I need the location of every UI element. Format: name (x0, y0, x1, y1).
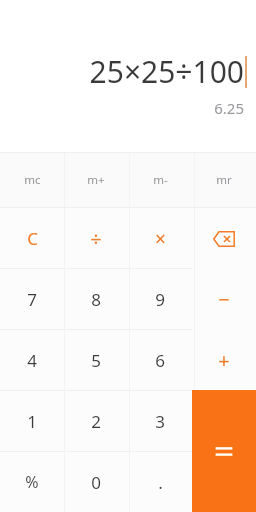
button[interactable]: Equals (192, 390, 256, 512)
staticText: 6 (155, 349, 165, 372)
staticText: 9 (155, 288, 165, 311)
button[interactable]: % (0, 452, 64, 512)
button[interactable]: × (128, 208, 192, 269)
staticText: 7 (27, 288, 37, 311)
staticText: 3 (155, 410, 165, 433)
button[interactable]: 4 (0, 330, 64, 391)
staticText: m+ (87, 172, 105, 188)
staticText: 4 (27, 349, 37, 372)
button[interactable]: 6 (128, 330, 192, 391)
button[interactable]: mc (0, 152, 64, 208)
button[interactable]: 0 (64, 452, 128, 512)
button[interactable]: 2 (64, 391, 128, 452)
button[interactable]: 7 (0, 269, 64, 330)
staticText: mr (216, 172, 232, 188)
staticText: mc (24, 172, 41, 188)
button[interactable]: ÷ (64, 208, 128, 269)
button[interactable]: m- (128, 152, 192, 208)
button[interactable]: m+ (64, 152, 128, 208)
staticText: 6.25 (214, 98, 244, 118)
staticText: % (25, 471, 39, 493)
staticText: 1 (27, 410, 37, 433)
button[interactable]: + (192, 330, 256, 391)
staticText: ÷ (90, 225, 102, 252)
staticText: − (218, 286, 230, 313)
staticText: × (155, 226, 166, 252)
button[interactable]: 5 (64, 330, 128, 391)
staticText: 2 (91, 410, 101, 433)
button[interactable]: − (192, 269, 256, 330)
button[interactable]: C (0, 208, 64, 269)
staticText: . (158, 471, 163, 494)
staticText: 25×25÷100 (89, 51, 244, 92)
button[interactable]: mr (192, 152, 256, 208)
staticText: C (27, 227, 38, 250)
staticText: + (218, 347, 230, 374)
staticText: 8 (91, 288, 101, 311)
button[interactable]: . (128, 452, 192, 512)
staticText: 5 (91, 349, 101, 372)
button[interactable]: 3 (128, 391, 192, 452)
button[interactable]: 9 (128, 269, 192, 330)
button[interactable]: 1 (0, 391, 64, 452)
button[interactable]: 8 (64, 269, 128, 330)
button[interactable]: Backspace (192, 208, 256, 269)
staticText: m- (153, 172, 168, 188)
staticText: 0 (91, 471, 101, 494)
